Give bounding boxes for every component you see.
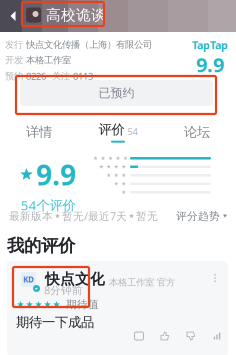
- staticText: 发行: [5, 39, 23, 50]
- staticText: 快点文化: [45, 270, 105, 288]
- button[interactable]: Comment: [134, 331, 144, 341]
- staticText: 本格工作室: [26, 54, 71, 66]
- staticText: 最新版本: [9, 209, 53, 223]
- staticText: 论坛: [184, 124, 210, 140]
- staticText: 我的评价: [7, 235, 75, 256]
- button[interactable]: 论坛: [158, 122, 236, 142]
- staticText: 暂无/最近7天: [62, 209, 127, 223]
- staticText: 54个评价: [20, 196, 75, 214]
- staticText: 高校诡谈: [46, 6, 106, 24]
- staticText: KD: [23, 274, 34, 285]
- button[interactable]: 已预约: [20, 80, 213, 106]
- button[interactable]: Like: [160, 331, 170, 341]
- staticText: 8113: [73, 70, 93, 82]
- button[interactable]: 评价: [78, 121, 158, 143]
- staticText: 9.9: [196, 51, 224, 78]
- staticText: 预约: [5, 70, 23, 82]
- button[interactable]: Back: [4, 5, 22, 27]
- staticText: 已预约: [98, 86, 134, 100]
- staticText: 暂无: [136, 209, 158, 223]
- staticText: 评价: [98, 121, 124, 138]
- staticText: 54: [127, 125, 137, 138]
- button[interactable]: More options: [209, 270, 221, 286]
- staticText: 9.9: [36, 156, 76, 193]
- staticText: 详情: [26, 124, 52, 140]
- staticText: 关注: [52, 70, 70, 82]
- staticText: 评分趋势: [176, 209, 220, 223]
- staticText: TapTap: [192, 38, 228, 52]
- button[interactable]: 详情: [0, 122, 78, 142]
- button[interactable]: Dislike: [186, 331, 196, 341]
- staticText: 本格工作室 官方: [109, 277, 175, 288]
- staticText: 快点文化传播（上海）有限公司: [26, 39, 152, 50]
- staticText: 8分钟前: [44, 283, 83, 297]
- button[interactable]: 评分趋势: [176, 209, 227, 223]
- staticText: 开发: [5, 54, 23, 66]
- staticText: 8226: [26, 70, 46, 82]
- staticText: 期待值: [66, 298, 99, 311]
- button[interactable]: Stats: [212, 331, 222, 341]
- staticText: 期待一下成品: [16, 314, 94, 330]
